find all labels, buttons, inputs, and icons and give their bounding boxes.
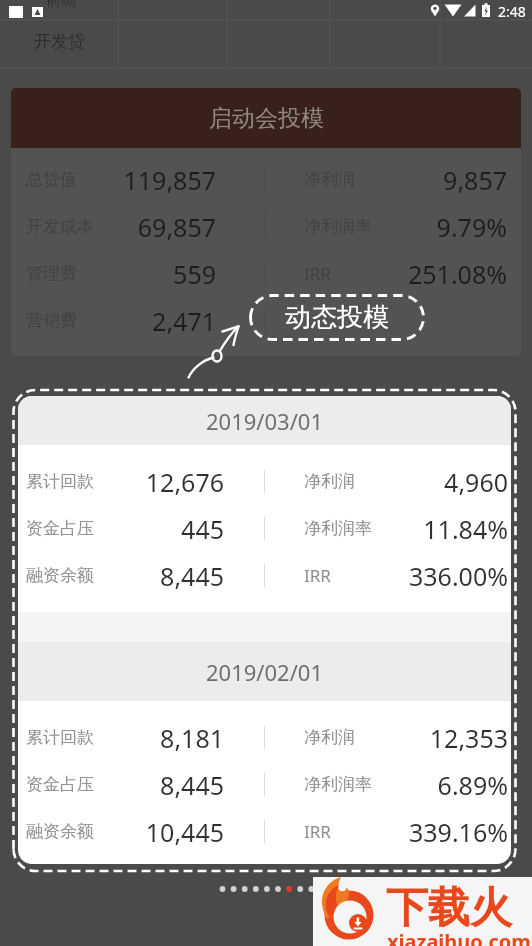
button[interactable]: 2019/02/01: [18, 642, 511, 701]
staticText: 9.79%: [372, 210, 507, 244]
staticText: 8,445: [94, 768, 224, 802]
staticText: 净利润: [304, 471, 355, 492]
staticText: 2:48: [498, 2, 526, 21]
staticText: 融资余额: [26, 565, 94, 586]
staticText: [304, 304, 507, 338]
button[interactable]: 融资余额: [18, 808, 511, 855]
staticText: 2,471: [77, 304, 216, 338]
button[interactable]: 融资余额: [18, 552, 511, 599]
staticText: 336.00%: [331, 559, 508, 593]
staticText: 资金占压: [26, 774, 94, 795]
staticText: 8,181: [94, 721, 224, 755]
staticText: 融资余额: [26, 821, 94, 842]
staticText: 12,353: [355, 721, 508, 755]
staticText: 启动会投模: [209, 104, 324, 133]
button[interactable]: 动态投模: [249, 294, 425, 341]
staticText: 10,445: [94, 815, 224, 849]
staticText: IRR: [304, 564, 331, 587]
staticText: 资金占压: [26, 518, 94, 539]
staticText: 净利润率: [304, 216, 372, 237]
staticText: 营销费: [26, 310, 77, 331]
button[interactable]: 累计回款: [18, 714, 511, 761]
staticText: 净利润率: [304, 774, 372, 795]
button[interactable]: 累计回款: [18, 458, 511, 505]
staticText: 前瞻: [46, 0, 76, 10]
staticText: IRR: [304, 262, 331, 285]
staticText: 2019/03/01: [206, 406, 324, 436]
button[interactable]: 管理费: [11, 250, 521, 297]
button[interactable]: 营销费: [11, 297, 521, 344]
button[interactable]: 2019/03/01: [18, 396, 511, 864]
staticText: 559: [77, 257, 216, 291]
staticText: 2019/02/01: [206, 657, 324, 687]
button[interactable]: 开发成本: [11, 203, 521, 250]
staticText: 净利润率: [304, 518, 372, 539]
staticText: 6.89%: [372, 768, 508, 802]
staticText: 339.16%: [331, 815, 508, 849]
staticText: 累计回款: [26, 727, 94, 748]
staticText: 12,676: [94, 465, 224, 499]
staticText: 管理费: [26, 263, 77, 284]
staticText: 11.84%: [372, 512, 508, 546]
staticText: 净利润: [304, 169, 355, 190]
staticText: 动态投模: [285, 301, 389, 334]
staticText: 累计回款: [26, 471, 94, 492]
staticText: 开发贷: [34, 31, 85, 52]
button[interactable]: 资金占压: [18, 761, 511, 808]
staticText: IRR: [304, 820, 331, 843]
staticText: 8,445: [94, 559, 224, 593]
button[interactable]: 启动会投模: [11, 88, 521, 148]
staticText: 开发成本: [26, 216, 94, 237]
staticText: xiazaihuo.com: [387, 928, 531, 946]
staticText: 总贷值: [26, 169, 77, 190]
button[interactable]: 总贷值: [11, 156, 521, 203]
staticText: 251.08%: [331, 257, 507, 291]
button[interactable]: 资金占压: [18, 505, 511, 552]
staticText: 净利润: [304, 727, 355, 748]
button[interactable]: 2019/03/01: [18, 396, 511, 445]
staticText: 119,857: [77, 163, 216, 197]
staticText: 9,857: [355, 163, 507, 197]
staticText: 69,857: [94, 210, 216, 244]
staticText: 下载火: [386, 882, 512, 935]
staticText: 445: [94, 512, 224, 546]
staticText: 4,960: [355, 465, 508, 499]
